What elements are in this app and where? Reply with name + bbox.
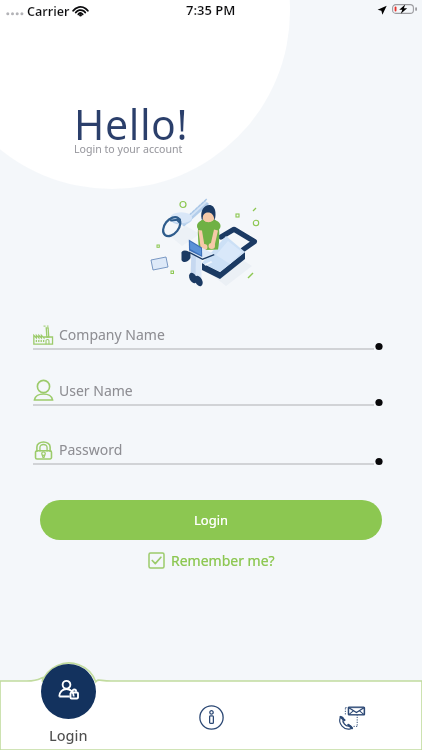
staticText: Carrier xyxy=(27,3,70,20)
staticText: Remember me? xyxy=(171,551,275,570)
button[interactable]: Login xyxy=(40,500,382,540)
staticText: Password xyxy=(59,440,123,459)
button[interactable]: Password xyxy=(33,433,382,465)
button[interactable]: Login xyxy=(41,664,96,745)
staticText: User Name xyxy=(59,381,133,400)
button[interactable]: Info xyxy=(198,704,224,730)
staticText: 7:35 PM xyxy=(186,1,236,19)
staticText: Login xyxy=(49,725,88,745)
button[interactable]: Remember me? xyxy=(148,551,275,570)
staticText: Login xyxy=(194,511,229,529)
staticText: Hello! xyxy=(74,96,189,152)
staticText: Login to your account xyxy=(74,142,183,156)
button[interactable]: Contact xyxy=(338,703,365,730)
button[interactable]: Company Name xyxy=(33,318,382,350)
staticText: Company Name xyxy=(59,325,165,344)
button[interactable]: User Name xyxy=(33,374,382,406)
